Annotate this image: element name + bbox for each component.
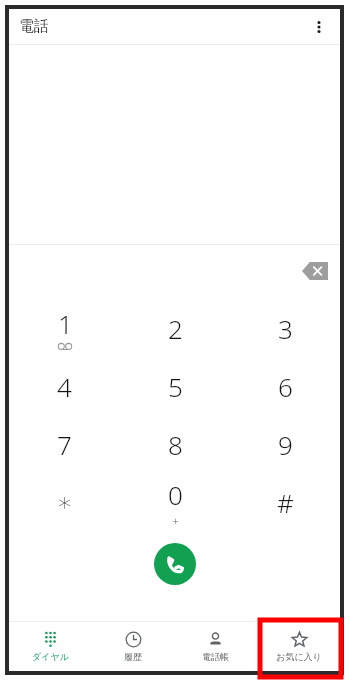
staticText: 7 [57,427,72,462]
staticText: 5 [168,369,183,404]
staticText: 履歴 [124,651,142,662]
button[interactable]: 1 [9,299,120,357]
staticText: 1 [58,306,73,341]
staticText: ダイヤル [32,651,69,662]
button[interactable]: 7 [9,415,120,473]
staticText: 6 [278,369,293,404]
staticText: 電話 [19,17,49,36]
button[interactable]: 6 [230,357,340,415]
button[interactable]: 2 [120,299,230,357]
staticText: ∗ [56,487,73,517]
staticText: 電話帳 [202,651,229,662]
staticText: 3 [278,311,293,346]
staticText: + [172,513,179,528]
button[interactable]: Call [154,543,196,585]
button[interactable]: 5 [120,357,230,415]
staticText: お気に入り [276,651,322,662]
button[interactable]: ∗ [9,473,120,531]
button[interactable]: 3 [230,299,340,357]
staticText: # [277,485,294,520]
staticText: 4 [57,369,72,404]
button[interactable]: 9 [230,415,340,473]
button[interactable]: お気に入り [257,622,340,671]
button[interactable]: 8 [120,415,230,473]
button[interactable]: ダイヤル [9,622,91,671]
staticText: 8 [168,427,183,462]
button[interactable]: 0 [120,473,230,531]
button[interactable]: 4 [9,357,120,415]
staticText: 0 [168,477,183,512]
staticText: 9 [278,427,293,462]
button[interactable]: Backspace [298,258,332,284]
button[interactable]: 履歴 [91,622,174,671]
button[interactable]: More options [304,12,334,42]
staticText: 2 [168,311,183,346]
button[interactable]: # [230,473,340,531]
button[interactable]: 電話帳 [174,622,257,671]
